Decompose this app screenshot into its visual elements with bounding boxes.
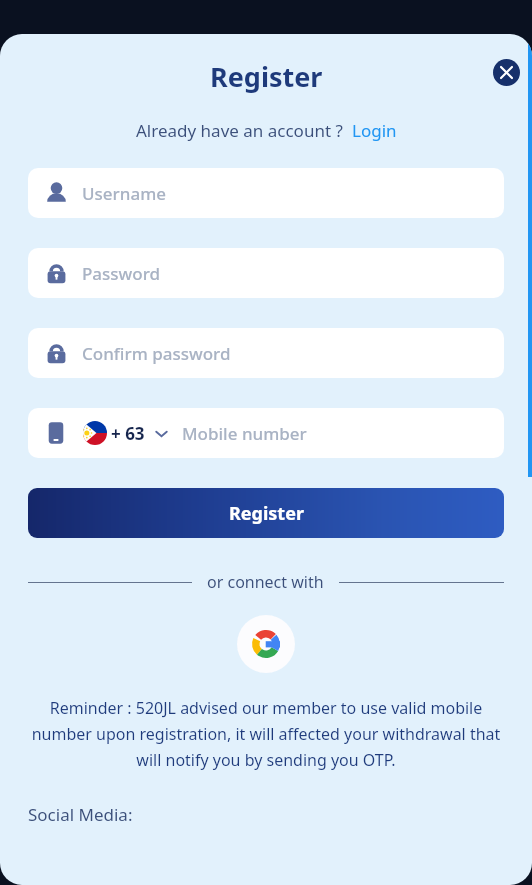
staticText: or connect with — [207, 571, 324, 593]
button[interactable]: Close — [493, 59, 520, 86]
button[interactable]: Username — [28, 168, 504, 218]
staticText: Username — [82, 182, 166, 205]
button[interactable]: Register — [28, 488, 504, 538]
staticText: Password — [82, 262, 161, 285]
staticText: Confirm password — [82, 342, 231, 365]
staticText: Register — [229, 501, 304, 526]
button[interactable]: Password — [28, 248, 504, 298]
staticText: Mobile number — [182, 422, 307, 445]
staticText: Login — [352, 119, 397, 142]
button[interactable]: Login — [352, 119, 397, 142]
button[interactable]: Confirm password — [28, 328, 504, 378]
staticText: Reminder : 520JL advised our member to u… — [28, 697, 504, 771]
staticText: + 63 — [111, 422, 145, 445]
staticText: Social Media: — [28, 803, 133, 826]
button[interactable]: + 63 — [28, 408, 504, 458]
staticText: Register — [210, 58, 323, 95]
staticText: Already have an account ? — [136, 119, 343, 142]
button[interactable]: Sign in with Google — [237, 615, 295, 673]
